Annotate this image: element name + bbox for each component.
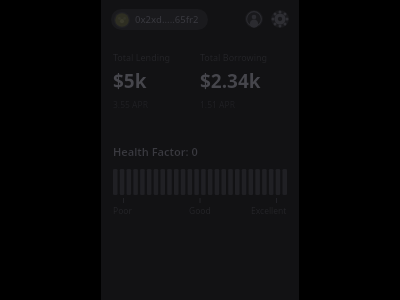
staticText: $5k — [113, 68, 147, 94]
staticText: 0x2xd.....65fr2 — [135, 13, 199, 26]
staticText: Total Borrowing — [200, 51, 268, 63]
staticText: Poor — [113, 205, 132, 217]
button[interactable]: Account — [245, 10, 263, 28]
staticText: Total Lending — [113, 51, 171, 63]
button[interactable]: Settings — [271, 10, 289, 28]
staticText: Excellent — [251, 205, 287, 217]
button[interactable]: 0x2xd.....65fr2 — [111, 9, 208, 30]
staticText: $2.34k — [200, 68, 261, 94]
staticText: Health Factor: 0 — [113, 144, 198, 159]
staticText: 3.55 APR — [113, 99, 148, 111]
staticText: Good — [189, 205, 211, 217]
staticText: 1.51 APR — [200, 99, 235, 111]
